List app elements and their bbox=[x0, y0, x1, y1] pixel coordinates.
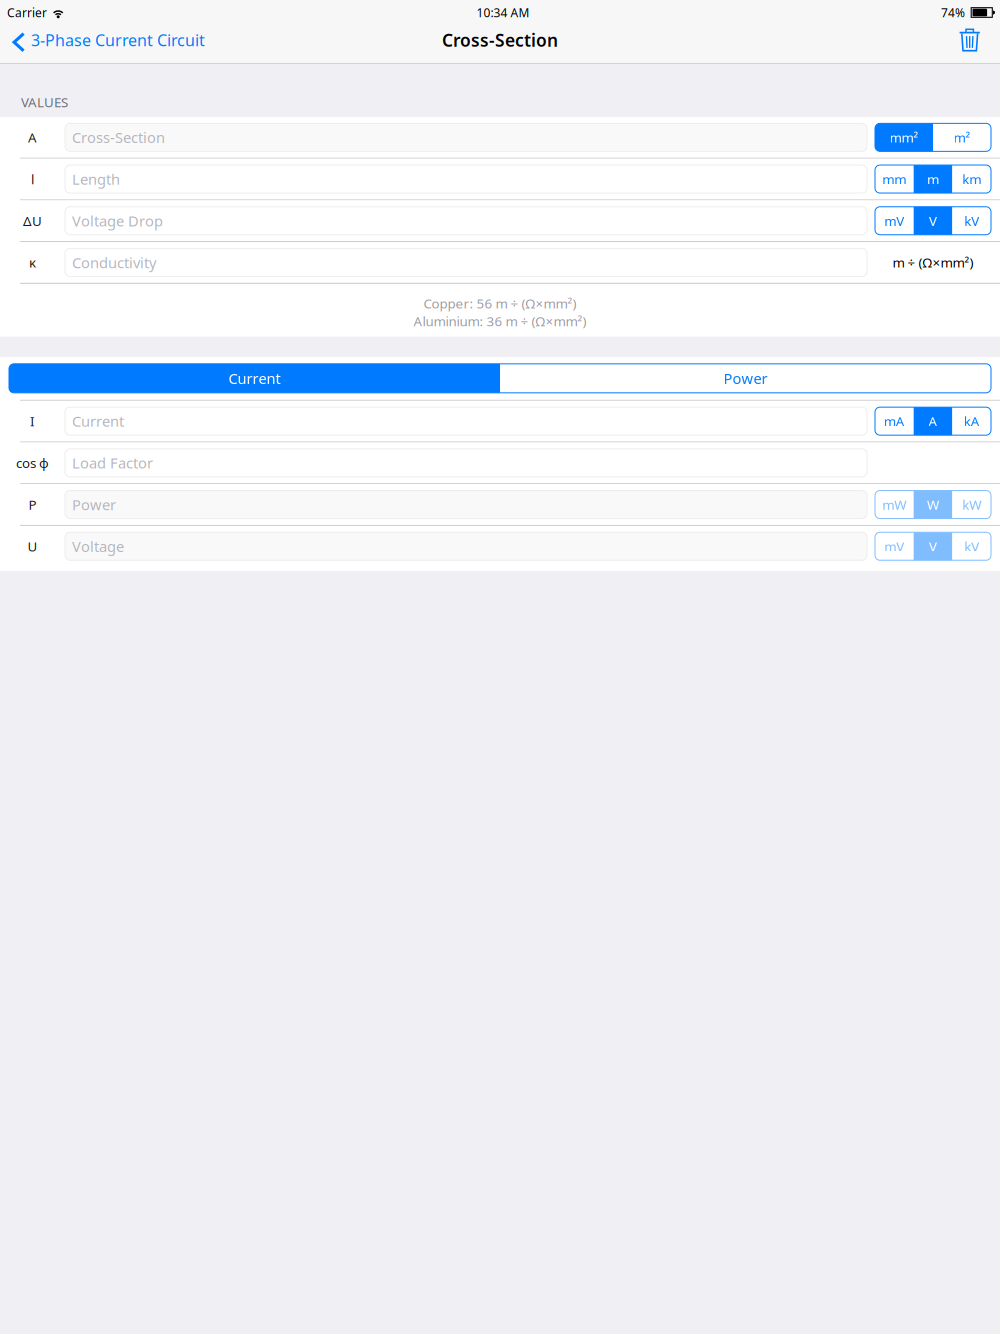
staticText: m bbox=[927, 170, 939, 188]
staticText: mm² bbox=[889, 128, 918, 146]
button[interactable]: Power bbox=[65, 491, 867, 519]
button[interactable]: Length bbox=[65, 165, 867, 193]
staticText: κ bbox=[29, 254, 36, 271]
staticText: l bbox=[31, 170, 34, 188]
staticText: VALUES bbox=[21, 93, 68, 111]
staticText: mV bbox=[884, 537, 904, 555]
button[interactable]: mV bbox=[875, 532, 914, 560]
button[interactable]: Load Factor bbox=[65, 449, 867, 477]
button[interactable]: V bbox=[914, 207, 952, 235]
staticText: mV bbox=[884, 212, 904, 230]
button[interactable]: Delete bbox=[948, 25, 991, 62]
button[interactable]: Current bbox=[9, 364, 500, 393]
button[interactable]: 3-Phase Current Circuit bbox=[0, 25, 213, 63]
staticText: Length bbox=[72, 169, 120, 189]
button[interactable]: mA bbox=[875, 407, 914, 435]
staticText: V bbox=[929, 537, 937, 555]
staticText: Carrier bbox=[7, 4, 47, 20]
staticText: km bbox=[962, 170, 981, 188]
button[interactable]: W bbox=[914, 491, 952, 519]
staticText: Power bbox=[723, 369, 767, 388]
button[interactable]: A bbox=[914, 407, 952, 435]
staticText: kV bbox=[964, 212, 979, 230]
button[interactable]: Voltage Drop bbox=[65, 207, 867, 235]
button[interactable]: mW bbox=[875, 491, 914, 519]
staticText: Copper: 56 m ÷ (Ω×mm²) bbox=[423, 295, 576, 312]
button[interactable]: Power bbox=[500, 364, 991, 393]
staticText: Conductivity bbox=[72, 253, 156, 272]
staticText: Aluminium: 36 m ÷ (Ω×mm²) bbox=[413, 312, 586, 330]
staticText: P bbox=[28, 496, 36, 513]
staticText: m ÷ (Ω×mm²) bbox=[892, 254, 973, 271]
staticText: mm bbox=[882, 170, 906, 188]
button[interactable]: Cross-Section bbox=[65, 123, 867, 151]
button[interactable]: mm² bbox=[875, 123, 933, 151]
button[interactable]: kV bbox=[952, 532, 991, 560]
staticText: A bbox=[28, 128, 37, 146]
button[interactable]: Conductivity bbox=[65, 248, 867, 276]
button[interactable]: m² bbox=[933, 123, 991, 151]
staticText: Cross-Section bbox=[72, 128, 165, 147]
button[interactable]: kW bbox=[952, 491, 991, 519]
staticText: mA bbox=[884, 412, 905, 430]
staticText: I bbox=[30, 412, 35, 430]
staticText: Current bbox=[228, 369, 280, 388]
button[interactable]: m bbox=[914, 165, 952, 193]
staticText: ΔU bbox=[23, 212, 42, 230]
staticText: kV bbox=[964, 537, 979, 555]
staticText: W bbox=[927, 496, 939, 513]
staticText: Power bbox=[72, 495, 116, 514]
button[interactable]: V bbox=[914, 532, 952, 560]
staticText: 74% bbox=[941, 4, 965, 20]
staticText: Voltage Drop bbox=[72, 211, 163, 230]
staticText: Current bbox=[72, 411, 124, 431]
staticText: V bbox=[929, 212, 937, 230]
staticText: m² bbox=[953, 128, 970, 146]
button[interactable]: mV bbox=[875, 207, 914, 235]
button[interactable]: mm bbox=[875, 165, 914, 193]
button[interactable]: km bbox=[952, 165, 991, 193]
staticText: cos φ bbox=[16, 454, 49, 472]
staticText: Voltage bbox=[72, 536, 124, 556]
staticText: U bbox=[27, 537, 37, 555]
button[interactable]: Current bbox=[65, 407, 867, 435]
staticText: kW bbox=[962, 496, 981, 513]
button[interactable]: kA bbox=[952, 407, 991, 435]
button[interactable]: kV bbox=[952, 207, 991, 235]
staticText: A bbox=[928, 412, 937, 430]
staticText: 10:34 AM bbox=[476, 4, 529, 20]
staticText: mW bbox=[882, 496, 906, 513]
staticText: 3-Phase Current Circuit bbox=[31, 29, 205, 51]
staticText: Load Factor bbox=[72, 453, 153, 473]
staticText: Cross-Section bbox=[442, 28, 558, 51]
staticText: kA bbox=[964, 412, 980, 430]
button[interactable]: Voltage bbox=[65, 532, 867, 560]
